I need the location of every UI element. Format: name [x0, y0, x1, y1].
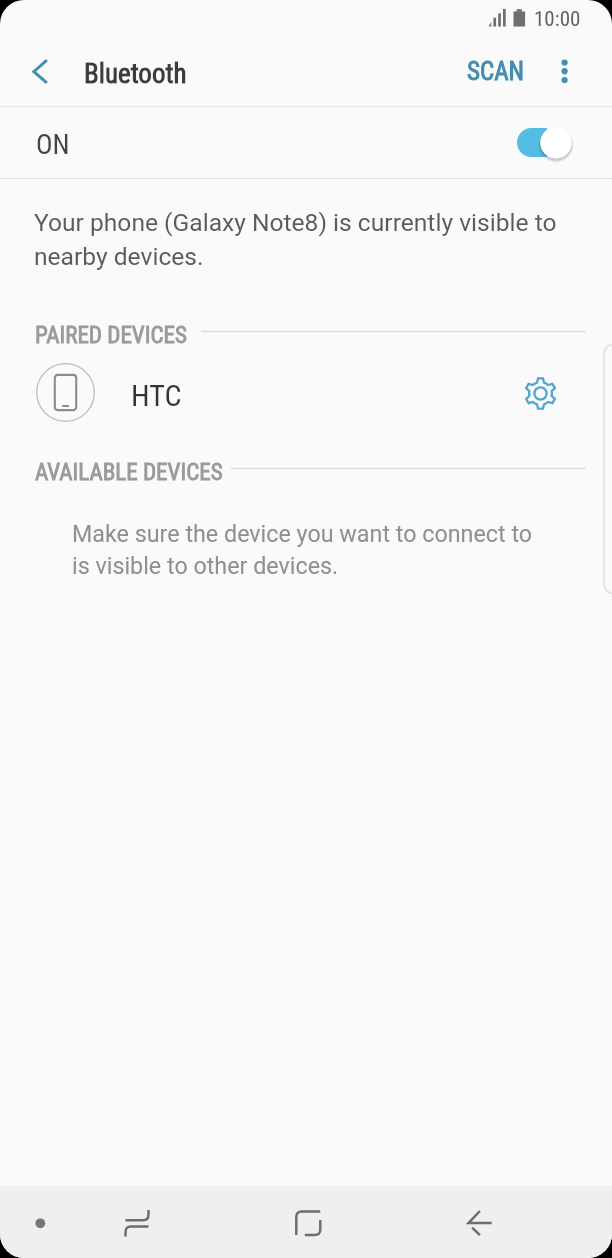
button[interactable]: Recent apps — [106, 1193, 167, 1254]
staticText: AVAILABLE DEVICES — [35, 459, 223, 483]
button[interactable]: Back — [449, 1193, 510, 1254]
staticText: Your phone (Galaxy Note8) is currently v… — [34, 208, 574, 271]
staticText: 10:00 — [534, 7, 581, 32]
button[interactable]: Notifications — [10, 1193, 71, 1254]
button[interactable]: Home — [278, 1193, 339, 1254]
staticText: Make sure the device you want to connect… — [72, 520, 547, 579]
button[interactable]: SCAN — [455, 46, 537, 96]
button[interactable]: Device settings — [516, 369, 564, 417]
button[interactable]: HTC — [0, 355, 612, 433]
staticText: Bluetooth — [84, 58, 187, 90]
staticText: SCAN — [467, 57, 525, 86]
staticText: PAIRED DEVICES — [35, 322, 187, 346]
staticText: ON — [36, 128, 70, 160]
staticText: HTC — [131, 378, 182, 413]
button[interactable]: ON — [0, 107, 612, 178]
button[interactable]: More options — [542, 48, 588, 94]
button[interactable]: Navigate up — [14, 52, 54, 92]
